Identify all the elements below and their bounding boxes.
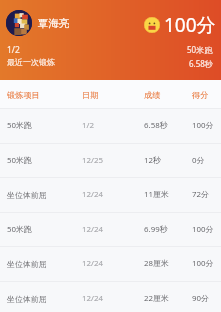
staticText: 坐位体前屈 [7,294,47,304]
button[interactable]: 50米跑 [0,213,221,248]
staticText: 12/25 [82,155,103,166]
staticText: 成绩 [144,90,161,100]
staticText: 日期 [82,90,99,100]
staticText: 90分 [192,293,209,304]
staticText: 0分 [192,155,205,166]
button[interactable]: Profile photo [6,10,32,36]
staticText: 6.58秒 [189,58,213,69]
staticText: 100分 [192,120,214,131]
button[interactable]: 坐位体前屈 [0,282,221,312]
staticText: 锻炼项目 [7,90,40,100]
staticText: 11厘米 [144,189,169,200]
staticText: 50米跑 [7,120,32,131]
staticText: 12/24 [82,258,103,269]
staticText: 72分 [192,189,209,200]
staticText: 6.99秒 [144,224,168,235]
staticText: 50米跑 [187,44,213,55]
button[interactable]: 坐位体前屈 [0,178,221,213]
staticText: 得分 [192,90,209,100]
staticText: 22厘米 [144,293,169,304]
staticText: 坐位体前屈 [7,259,47,269]
staticText: 12秒 [144,155,161,166]
staticText: 100分 [164,12,216,38]
staticText: 12/24 [82,293,103,304]
staticText: 50米跑 [7,224,32,235]
staticText: 最近一次锻炼 [7,57,55,67]
staticText: 100分 [192,224,214,235]
staticText: 12/24 [82,189,103,200]
staticText: 12/24 [82,224,103,235]
staticText: 坐位体前屈 [7,190,47,200]
button[interactable]: 坐位体前屈 [0,247,221,282]
staticText: 覃海亮 [38,17,70,30]
staticText: 28厘米 [144,258,169,269]
staticText: 100分 [192,258,214,269]
button[interactable]: 50米跑 [0,144,221,179]
staticText: 1/2 [7,44,20,56]
button[interactable]: 50米跑 [0,109,221,144]
staticText: 6.58秒 [144,120,168,131]
staticText: 1/2 [82,120,94,131]
staticText: 50米跑 [7,155,32,166]
